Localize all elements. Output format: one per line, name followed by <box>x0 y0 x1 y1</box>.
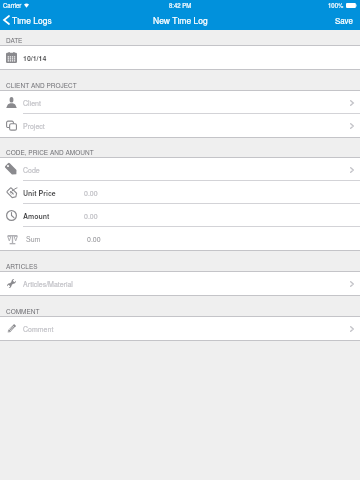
button[interactable]: Sum <box>0 227 360 250</box>
staticText: Client <box>23 98 41 108</box>
staticText: Sum <box>26 234 41 244</box>
staticText: ARTICLES <box>6 262 38 271</box>
staticText: COMMENT <box>6 307 40 316</box>
staticText: 0.00 <box>84 188 98 198</box>
staticText: Comment <box>23 324 54 334</box>
button[interactable]: Project <box>0 114 360 137</box>
staticText: Amount <box>23 211 50 221</box>
staticText: CLIENT AND PROJECT <box>6 81 77 90</box>
staticText: 0.00 <box>87 234 101 244</box>
staticText: 0.00 <box>84 211 98 221</box>
staticText: New Time Log <box>153 14 208 26</box>
button[interactable]: Code <box>0 158 360 181</box>
staticText: 100% <box>328 1 344 10</box>
button[interactable]: Unit Price <box>0 181 360 204</box>
staticText: Code <box>23 165 40 175</box>
button[interactable]: Save <box>328 15 360 26</box>
staticText: 8:42 PM <box>169 1 192 10</box>
staticText: Time Logs <box>12 14 52 26</box>
button[interactable]: Articles/Material <box>0 272 360 295</box>
button[interactable]: Amount <box>0 204 360 227</box>
staticText: 10/1/14 <box>23 53 47 63</box>
button[interactable]: Comment <box>0 317 360 340</box>
staticText: DATE <box>6 36 23 45</box>
staticText: CODE, PRICE AND AMOUNT <box>6 148 94 157</box>
staticText: Save <box>335 15 353 26</box>
staticText: Articles/Material <box>23 279 73 289</box>
staticText: Project <box>23 121 45 131</box>
button[interactable]: Back to Time Logs <box>0 14 56 26</box>
button[interactable]: 10/1/14 <box>0 46 360 69</box>
staticText: Carrier <box>3 1 22 10</box>
staticText: Unit Price <box>23 188 56 198</box>
button[interactable]: Client <box>0 91 360 114</box>
